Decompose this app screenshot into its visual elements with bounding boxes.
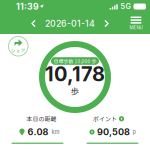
staticText: 11:39 <box>16 1 39 12</box>
staticText: km <box>52 129 60 135</box>
staticText: p <box>133 129 136 135</box>
staticText: MENU <box>129 25 142 30</box>
staticText: 目標歩数 10,000 歩 <box>53 57 96 64</box>
staticText: 10,178 <box>45 62 105 86</box>
staticText: ポイント <box>93 114 117 123</box>
button[interactable]: Share <box>8 36 28 56</box>
staticText: 歩 <box>71 85 79 97</box>
staticText: 本日の距離 <box>26 114 56 123</box>
button[interactable]: ポイント <box>75 114 150 144</box>
button[interactable]: 本日の距離 <box>0 114 75 144</box>
button[interactable]: Next day <box>101 16 112 31</box>
staticText: 6.08 <box>28 126 49 137</box>
staticText: 90,508 <box>97 126 130 137</box>
button[interactable]: Menu <box>127 15 145 32</box>
staticText: 2026-01-14 <box>45 18 95 29</box>
button[interactable]: Previous day <box>28 16 39 31</box>
staticText: 5G <box>120 2 130 11</box>
staticText: シェア <box>11 47 26 54</box>
